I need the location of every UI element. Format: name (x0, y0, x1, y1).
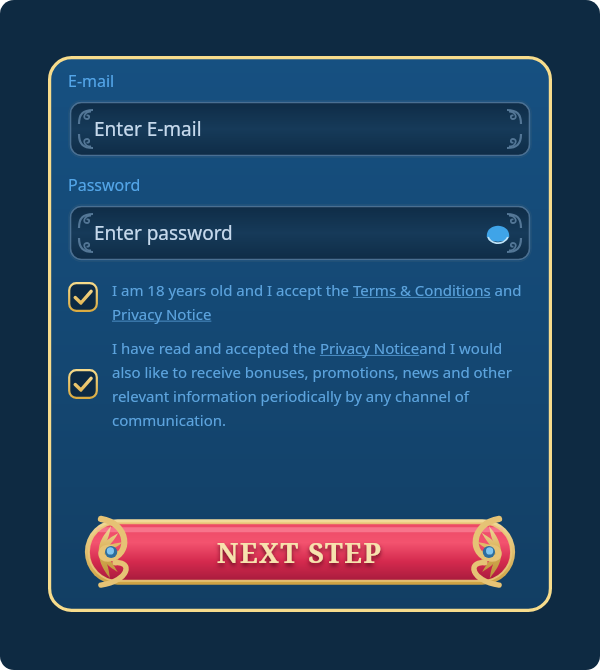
other: Checkbox, checked (68, 369, 98, 399)
button[interactable]: NEXT STEP (68, 512, 532, 592)
button[interactable]: Enter password (68, 204, 532, 262)
button[interactable]: Show password (484, 219, 512, 247)
staticText: I am 18 years old and I accept the Terms… (112, 280, 532, 324)
staticText: I have read and accepted the Privacy Not… (112, 338, 532, 430)
staticText: NEXT STEP (217, 534, 383, 571)
button[interactable]: Checkbox, checked (68, 280, 532, 324)
button[interactable]: Checkbox, checked (68, 338, 532, 430)
staticText: E-mail (68, 70, 115, 92)
other: Checkbox, checked (68, 282, 98, 312)
button[interactable]: Enter E-mail (68, 100, 532, 158)
staticText: Enter password (94, 220, 233, 246)
staticText: Password (68, 174, 141, 196)
staticText: Enter E-mail (94, 116, 202, 142)
